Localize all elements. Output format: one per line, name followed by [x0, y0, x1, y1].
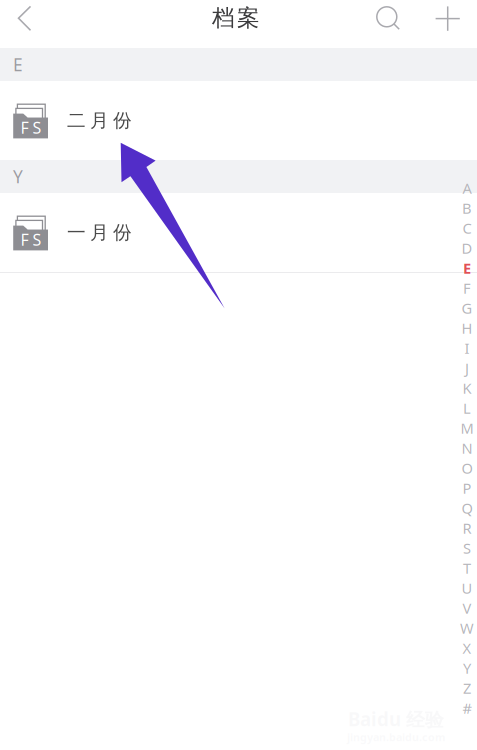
button[interactable]: C [454, 218, 477, 238]
staticText: K [462, 378, 471, 398]
staticText: Y [13, 165, 23, 188]
staticText: 一月份 [67, 221, 132, 244]
staticText: A [462, 178, 471, 198]
staticText: V [462, 598, 471, 618]
staticText: FS [20, 229, 41, 250]
staticText: T [463, 558, 471, 578]
button[interactable]: S [454, 538, 477, 558]
button[interactable]: T [454, 558, 477, 578]
staticText: E [13, 53, 23, 76]
staticText: N [461, 438, 472, 458]
staticText: Q [461, 498, 472, 518]
staticText: H [461, 318, 472, 338]
staticText: E [463, 258, 471, 278]
staticText: 档案 [212, 4, 260, 32]
button[interactable]: FS [0, 81, 477, 160]
staticText: W [460, 618, 474, 638]
button[interactable]: O [454, 458, 477, 478]
button[interactable]: L [454, 398, 477, 418]
staticText: # [462, 698, 471, 718]
staticText: G [461, 298, 472, 318]
button[interactable]: P [454, 478, 477, 498]
button[interactable]: B [454, 198, 477, 218]
button[interactable]: R [454, 518, 477, 538]
button[interactable]: D [454, 238, 477, 258]
button[interactable]: F [454, 278, 477, 298]
button[interactable]: Add [425, 0, 471, 43]
staticText: X [462, 638, 471, 658]
button[interactable]: # [454, 698, 477, 718]
button[interactable]: U [454, 578, 477, 598]
button[interactable]: M [454, 418, 477, 438]
staticText: F [463, 278, 471, 298]
button[interactable]: W [454, 618, 477, 638]
staticText: P [462, 478, 471, 498]
staticText: B [462, 198, 472, 218]
staticText: Y [463, 658, 471, 678]
staticText: 二月份 [67, 109, 132, 132]
button[interactable]: V [454, 598, 477, 618]
button[interactable]: Z [454, 678, 477, 698]
button[interactable]: X [454, 638, 477, 658]
button[interactable]: K [454, 378, 477, 398]
button[interactable]: Q [454, 498, 477, 518]
staticText: FS [20, 117, 41, 138]
staticText: C [462, 218, 471, 238]
staticText: I [464, 338, 469, 358]
button[interactable]: G [454, 298, 477, 318]
button[interactable]: A [454, 178, 477, 198]
button[interactable]: H [454, 318, 477, 338]
staticText: S [463, 538, 471, 558]
button[interactable]: J [454, 358, 477, 378]
button[interactable]: Search [365, 0, 411, 42]
button[interactable]: Back [0, 0, 52, 42]
staticText: D [461, 238, 472, 258]
staticText: U [461, 578, 472, 598]
staticText: R [462, 518, 471, 538]
button[interactable]: N [454, 438, 477, 458]
button[interactable]: FS [0, 193, 477, 272]
staticText: J [465, 358, 469, 378]
button[interactable]: E [454, 258, 477, 278]
staticText: O [461, 458, 472, 478]
staticText: M [460, 418, 473, 438]
staticText: Z [463, 678, 471, 698]
button[interactable]: I [454, 338, 477, 358]
staticText: L [463, 398, 471, 418]
button[interactable]: Y [454, 658, 477, 678]
